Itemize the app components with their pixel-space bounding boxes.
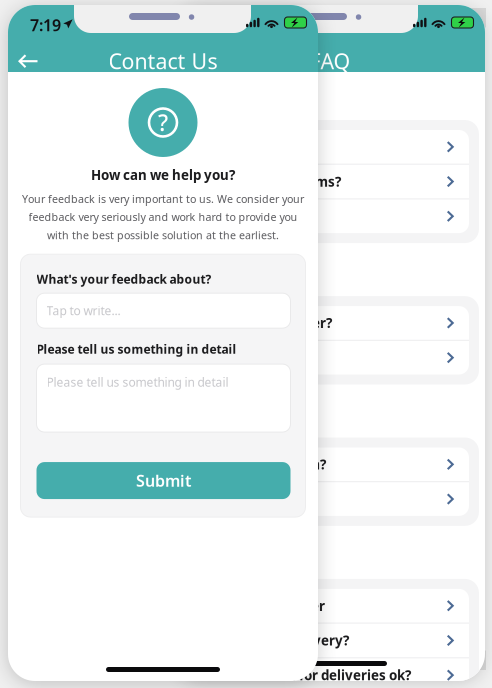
button[interactable]: What are the terms? (191, 165, 469, 198)
button[interactable]: Delivery info (191, 341, 469, 374)
button[interactable]: Back (10, 46, 50, 76)
button[interactable]: How do I order? (191, 130, 469, 164)
staticText: 7:19 (30, 14, 61, 36)
staticText: Is a minimum for deliveries ok? (205, 666, 411, 684)
button[interactable]: Submit (36, 462, 290, 499)
staticText: Your feedback is very important to us. W… (22, 192, 304, 206)
staticText: Submit (136, 470, 191, 491)
staticText: Delivery info (205, 349, 290, 366)
button[interactable]: Cancel order? (191, 199, 469, 233)
staticText: with the best possible solution at the e… (47, 228, 279, 242)
button[interactable]: Tap to write... (36, 293, 290, 328)
staticText: Refund policy (205, 490, 295, 508)
staticText: Where is my order? (205, 314, 332, 332)
button[interactable]: How do I get order (191, 589, 469, 623)
staticText: How can we help you? (91, 166, 235, 184)
staticText: Please tell us something in detail (46, 374, 228, 390)
button[interactable]: How do I get delivery? (191, 624, 469, 657)
staticText: Contact Us (108, 47, 217, 75)
button[interactable]: Please tell us something in detail (36, 364, 290, 432)
staticText: ? (158, 107, 168, 137)
staticText: Tap to write... (46, 303, 120, 319)
staticText: Cancel order? (205, 207, 295, 225)
staticText: How do I get order (205, 597, 325, 615)
staticText: What are the terms? (205, 173, 341, 190)
staticText: 7:19 (197, 14, 228, 36)
staticText: FAQ (309, 47, 350, 75)
staticText: feedback very seriously and work hard to… (28, 210, 297, 224)
button[interactable]: Is a minimum for deliveries ok? (191, 658, 469, 688)
staticText: Please tell us something in detail (36, 341, 236, 357)
staticText: How do I get delivery? (205, 632, 349, 649)
button[interactable]: Where is my order? (191, 306, 469, 340)
staticText: What's your feedback about? (36, 271, 211, 287)
staticText: Can I return item? (205, 455, 326, 473)
button[interactable]: Can I return item? (191, 447, 469, 481)
button[interactable]: Refund policy (191, 482, 469, 516)
